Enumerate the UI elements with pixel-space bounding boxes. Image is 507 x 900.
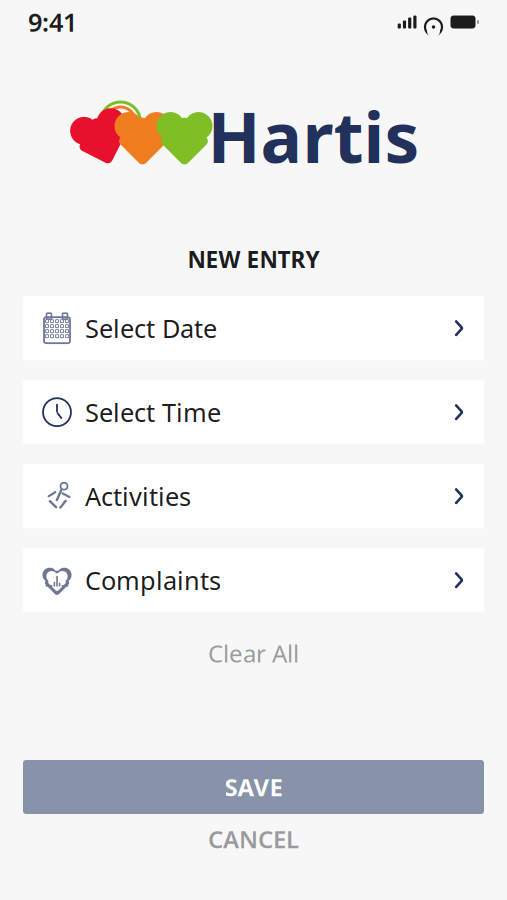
staticText: Select Date <box>85 311 217 345</box>
staticText: Select Time <box>85 395 221 429</box>
staticText: NEW ENTRY <box>187 244 319 274</box>
button[interactable]: CANCEL <box>23 814 484 864</box>
staticText: CANCEL <box>208 823 299 855</box>
button[interactable]: Activities <box>23 464 484 528</box>
button[interactable]: Clear All <box>186 630 321 676</box>
staticText: SAVE <box>224 771 282 803</box>
staticText: Activities <box>85 479 191 513</box>
button[interactable]: Select Date <box>23 296 484 360</box>
staticText: Hartis <box>207 90 419 182</box>
staticText: Complaints <box>85 563 221 597</box>
staticText: Clear All <box>208 637 299 669</box>
button[interactable]: Complaints <box>23 548 484 612</box>
button[interactable]: Select Time <box>23 380 484 444</box>
staticText: 9:41 <box>28 5 77 39</box>
button[interactable]: SAVE <box>23 760 484 814</box>
